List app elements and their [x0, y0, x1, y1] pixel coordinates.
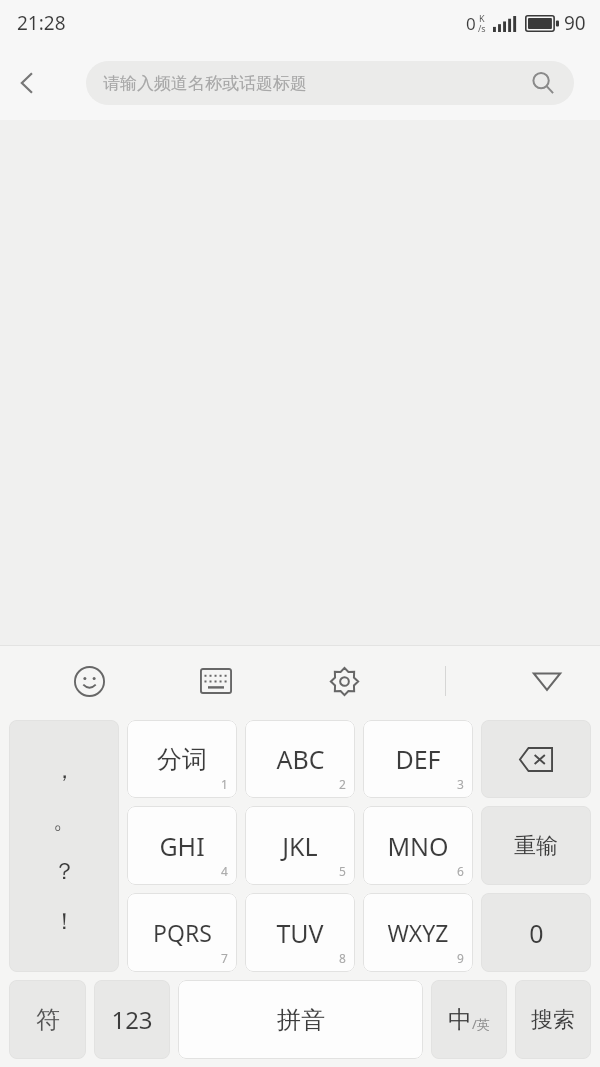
- staticText: 0: [466, 12, 476, 35]
- staticText: 7: [221, 950, 228, 966]
- staticText: 6: [457, 863, 464, 879]
- staticText: PQRS: [153, 917, 212, 948]
- button[interactable]: JKL: [245, 806, 355, 885]
- staticText: /s: [478, 22, 486, 34]
- staticText: 3: [457, 776, 464, 792]
- staticText: 拼音: [277, 1005, 325, 1035]
- button[interactable]: Keyboard layout: [189, 654, 243, 708]
- staticText: 。: [53, 806, 76, 835]
- button[interactable]: Backspace: [481, 720, 591, 798]
- staticText: DEF: [395, 742, 441, 776]
- staticText: ！: [53, 907, 76, 936]
- staticText: JKL: [282, 829, 318, 863]
- staticText: K: [479, 12, 485, 24]
- button[interactable]: 符: [9, 980, 86, 1059]
- button[interactable]: 请输入频道名称或话题标题: [86, 61, 574, 105]
- staticText: 9: [457, 950, 464, 966]
- staticText: TUV: [276, 916, 324, 950]
- staticText: 5: [339, 863, 346, 879]
- staticText: WXYZ: [387, 917, 449, 948]
- button[interactable]: Search: [526, 66, 560, 100]
- button[interactable]: Emoji: [62, 654, 116, 708]
- button[interactable]: WXYZ: [363, 893, 473, 972]
- button[interactable]: 分词: [127, 720, 237, 798]
- staticText: 搜索: [531, 1006, 575, 1034]
- staticText: MNO: [387, 829, 449, 863]
- button[interactable]: Back: [0, 55, 56, 111]
- staticText: 请输入频道名称或话题标题: [103, 73, 307, 94]
- staticText: 中: [448, 1005, 472, 1035]
- staticText: ，: [53, 756, 76, 785]
- staticText: 2: [339, 776, 346, 792]
- button[interactable]: Punctuation: [9, 720, 119, 972]
- staticText: 1: [221, 776, 228, 792]
- button[interactable]: 搜索: [515, 980, 591, 1059]
- button[interactable]: 123: [94, 980, 170, 1059]
- button[interactable]: Hide keyboard: [520, 654, 574, 708]
- staticText: 分词: [157, 744, 207, 775]
- staticText: ？: [53, 857, 76, 886]
- staticText: 90: [564, 10, 586, 36]
- button[interactable]: ABC: [245, 720, 355, 798]
- staticText: 0: [529, 916, 544, 950]
- staticText: GHI: [159, 829, 205, 863]
- button[interactable]: PQRS: [127, 893, 237, 972]
- staticText: 8: [339, 950, 346, 966]
- staticText: ABC: [276, 742, 325, 776]
- button[interactable]: DEF: [363, 720, 473, 798]
- staticText: 重输: [514, 832, 558, 860]
- button[interactable]: 中: [431, 980, 507, 1059]
- button[interactable]: GHI: [127, 806, 237, 885]
- button[interactable]: Settings: [317, 654, 371, 708]
- button[interactable]: MNO: [363, 806, 473, 885]
- staticText: 符: [36, 1005, 60, 1035]
- staticText: /英: [472, 1015, 490, 1033]
- staticText: 21:28: [17, 10, 66, 36]
- button[interactable]: 拼音: [178, 980, 423, 1059]
- staticText: 4: [221, 863, 228, 879]
- button[interactable]: 0: [481, 893, 591, 972]
- button[interactable]: 重输: [481, 806, 591, 885]
- staticText: 123: [111, 1003, 153, 1036]
- button[interactable]: TUV: [245, 893, 355, 972]
